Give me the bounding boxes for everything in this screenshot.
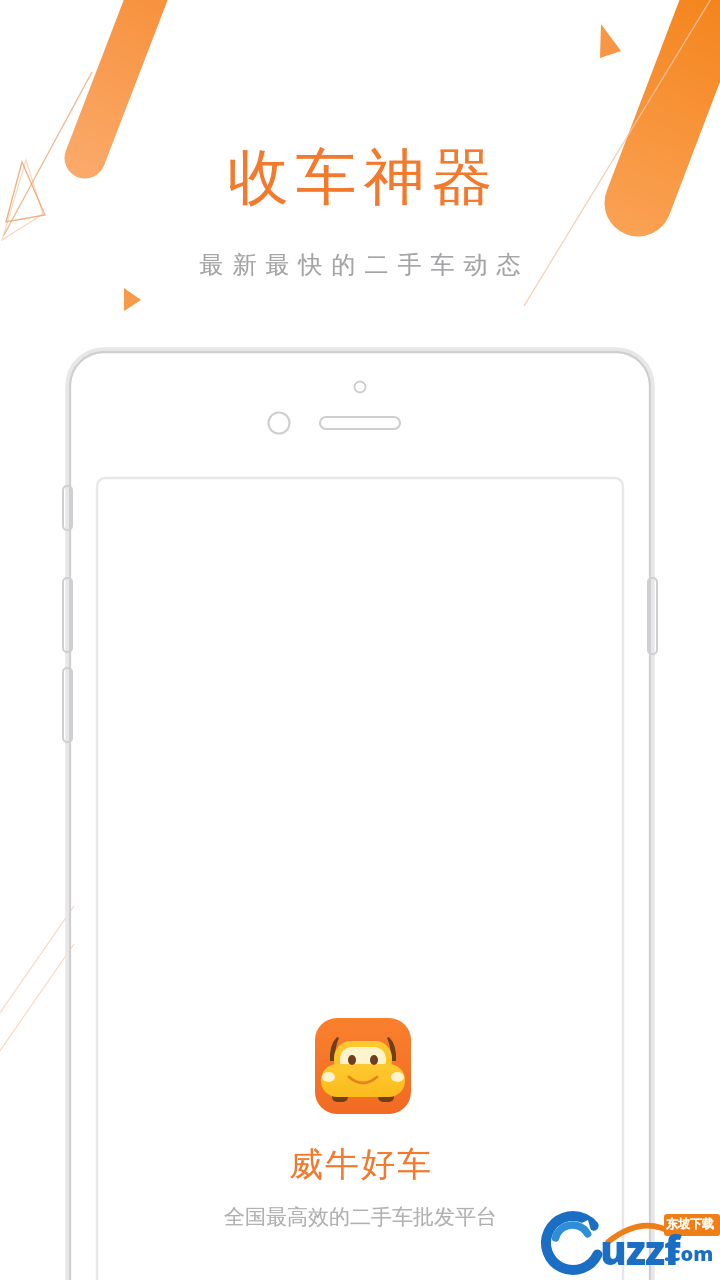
staticText: .com xyxy=(664,1240,714,1267)
button[interactable]: 威牛好车 xyxy=(288,1143,432,1186)
button[interactable]: 收车神器 xyxy=(224,139,496,216)
staticText: 全国最高效的二手车批发平台 xyxy=(224,1204,497,1230)
staticText: uzzf xyxy=(600,1222,680,1276)
button[interactable]: 威牛好车 app icon xyxy=(310,1014,410,1114)
staticText: 东坡下载 xyxy=(666,1216,714,1231)
staticText: 最新最快的二手车动态 xyxy=(195,250,525,280)
